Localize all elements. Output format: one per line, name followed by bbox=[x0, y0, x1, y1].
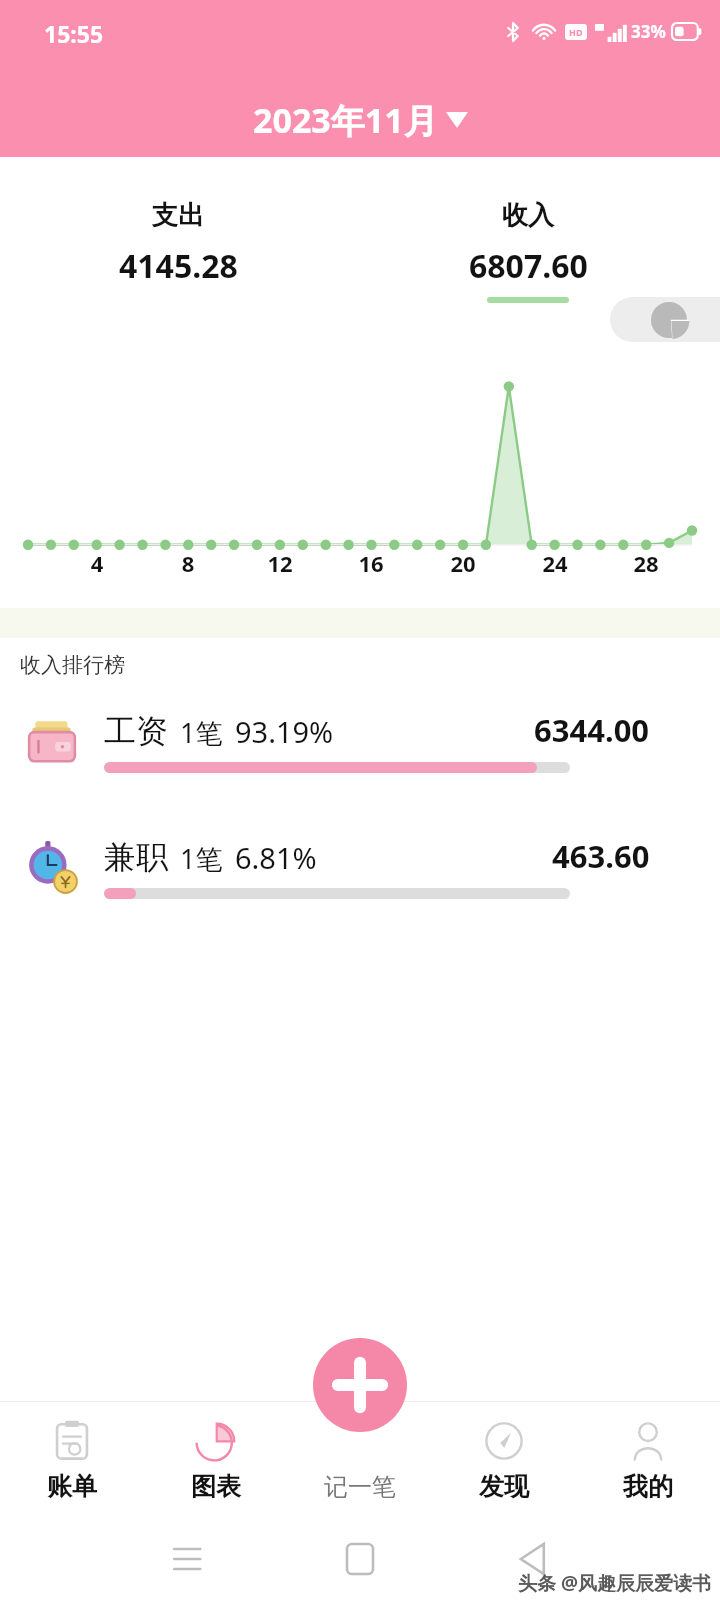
staticText: 1笔 bbox=[180, 714, 223, 751]
button[interactable]: 支出 bbox=[60, 199, 296, 303]
staticText: 记一笔 bbox=[324, 1472, 396, 1502]
staticText: 12 bbox=[264, 548, 296, 578]
staticText: 93.19% bbox=[235, 712, 334, 751]
staticText: 收入 bbox=[502, 199, 554, 232]
button[interactable]: 记一笔 bbox=[288, 1402, 432, 1518]
button[interactable]: 我的 bbox=[576, 1402, 720, 1518]
staticText: 6807.60 bbox=[469, 244, 588, 288]
staticText: 4145.28 bbox=[119, 244, 238, 288]
staticText: 头条 @风趣辰辰爱读书 bbox=[518, 1570, 712, 1596]
staticText: 1笔 bbox=[180, 840, 223, 877]
button[interactable]: 收入 bbox=[410, 199, 646, 303]
staticText: 支出 bbox=[152, 199, 204, 232]
staticText: 4 bbox=[81, 548, 113, 578]
button[interactable]: 图表 bbox=[144, 1402, 288, 1518]
staticText: 工资 bbox=[104, 711, 168, 751]
staticText: 图表 bbox=[191, 1471, 241, 1502]
staticText: 463.60 bbox=[552, 835, 650, 877]
staticText: 账单 bbox=[47, 1471, 97, 1502]
staticText: 20 bbox=[447, 548, 479, 578]
staticText: 6.81% bbox=[235, 838, 317, 877]
button[interactable]: 记一笔 bbox=[313, 1338, 407, 1432]
staticText: 28 bbox=[630, 548, 662, 578]
button[interactable]: 2023年11月 bbox=[253, 97, 468, 143]
staticText: 2023年11月 bbox=[253, 97, 438, 143]
button[interactable]: 工资 bbox=[0, 704, 720, 778]
staticText: 6344.00 bbox=[534, 709, 650, 751]
staticText: 33% bbox=[631, 20, 666, 43]
staticText: 24 bbox=[539, 548, 571, 578]
staticText: HD bbox=[569, 26, 583, 38]
button[interactable]: 发现 bbox=[432, 1402, 576, 1518]
button[interactable]: 饼图 bbox=[610, 297, 720, 342]
staticText: 8 bbox=[172, 548, 204, 578]
staticText: 收入排行榜 bbox=[20, 652, 125, 678]
staticText: 我的 bbox=[623, 1471, 673, 1502]
staticText: 发现 bbox=[479, 1471, 529, 1502]
staticText: 15:55 bbox=[44, 18, 104, 49]
staticText: 兼职 bbox=[104, 837, 168, 877]
staticText: 16 bbox=[355, 548, 387, 578]
button[interactable]: 账单 bbox=[0, 1402, 144, 1518]
button[interactable]: 兼职 bbox=[0, 830, 720, 904]
